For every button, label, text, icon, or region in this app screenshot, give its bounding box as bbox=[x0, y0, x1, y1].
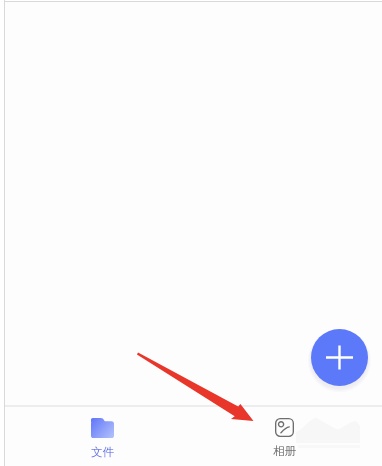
button[interactable]: 文件 bbox=[12, 407, 192, 466]
button[interactable]: Add bbox=[311, 329, 368, 386]
button[interactable]: 相册 bbox=[194, 407, 374, 466]
staticText: 相册 bbox=[273, 444, 296, 458]
staticText: 文件 bbox=[91, 445, 114, 459]
